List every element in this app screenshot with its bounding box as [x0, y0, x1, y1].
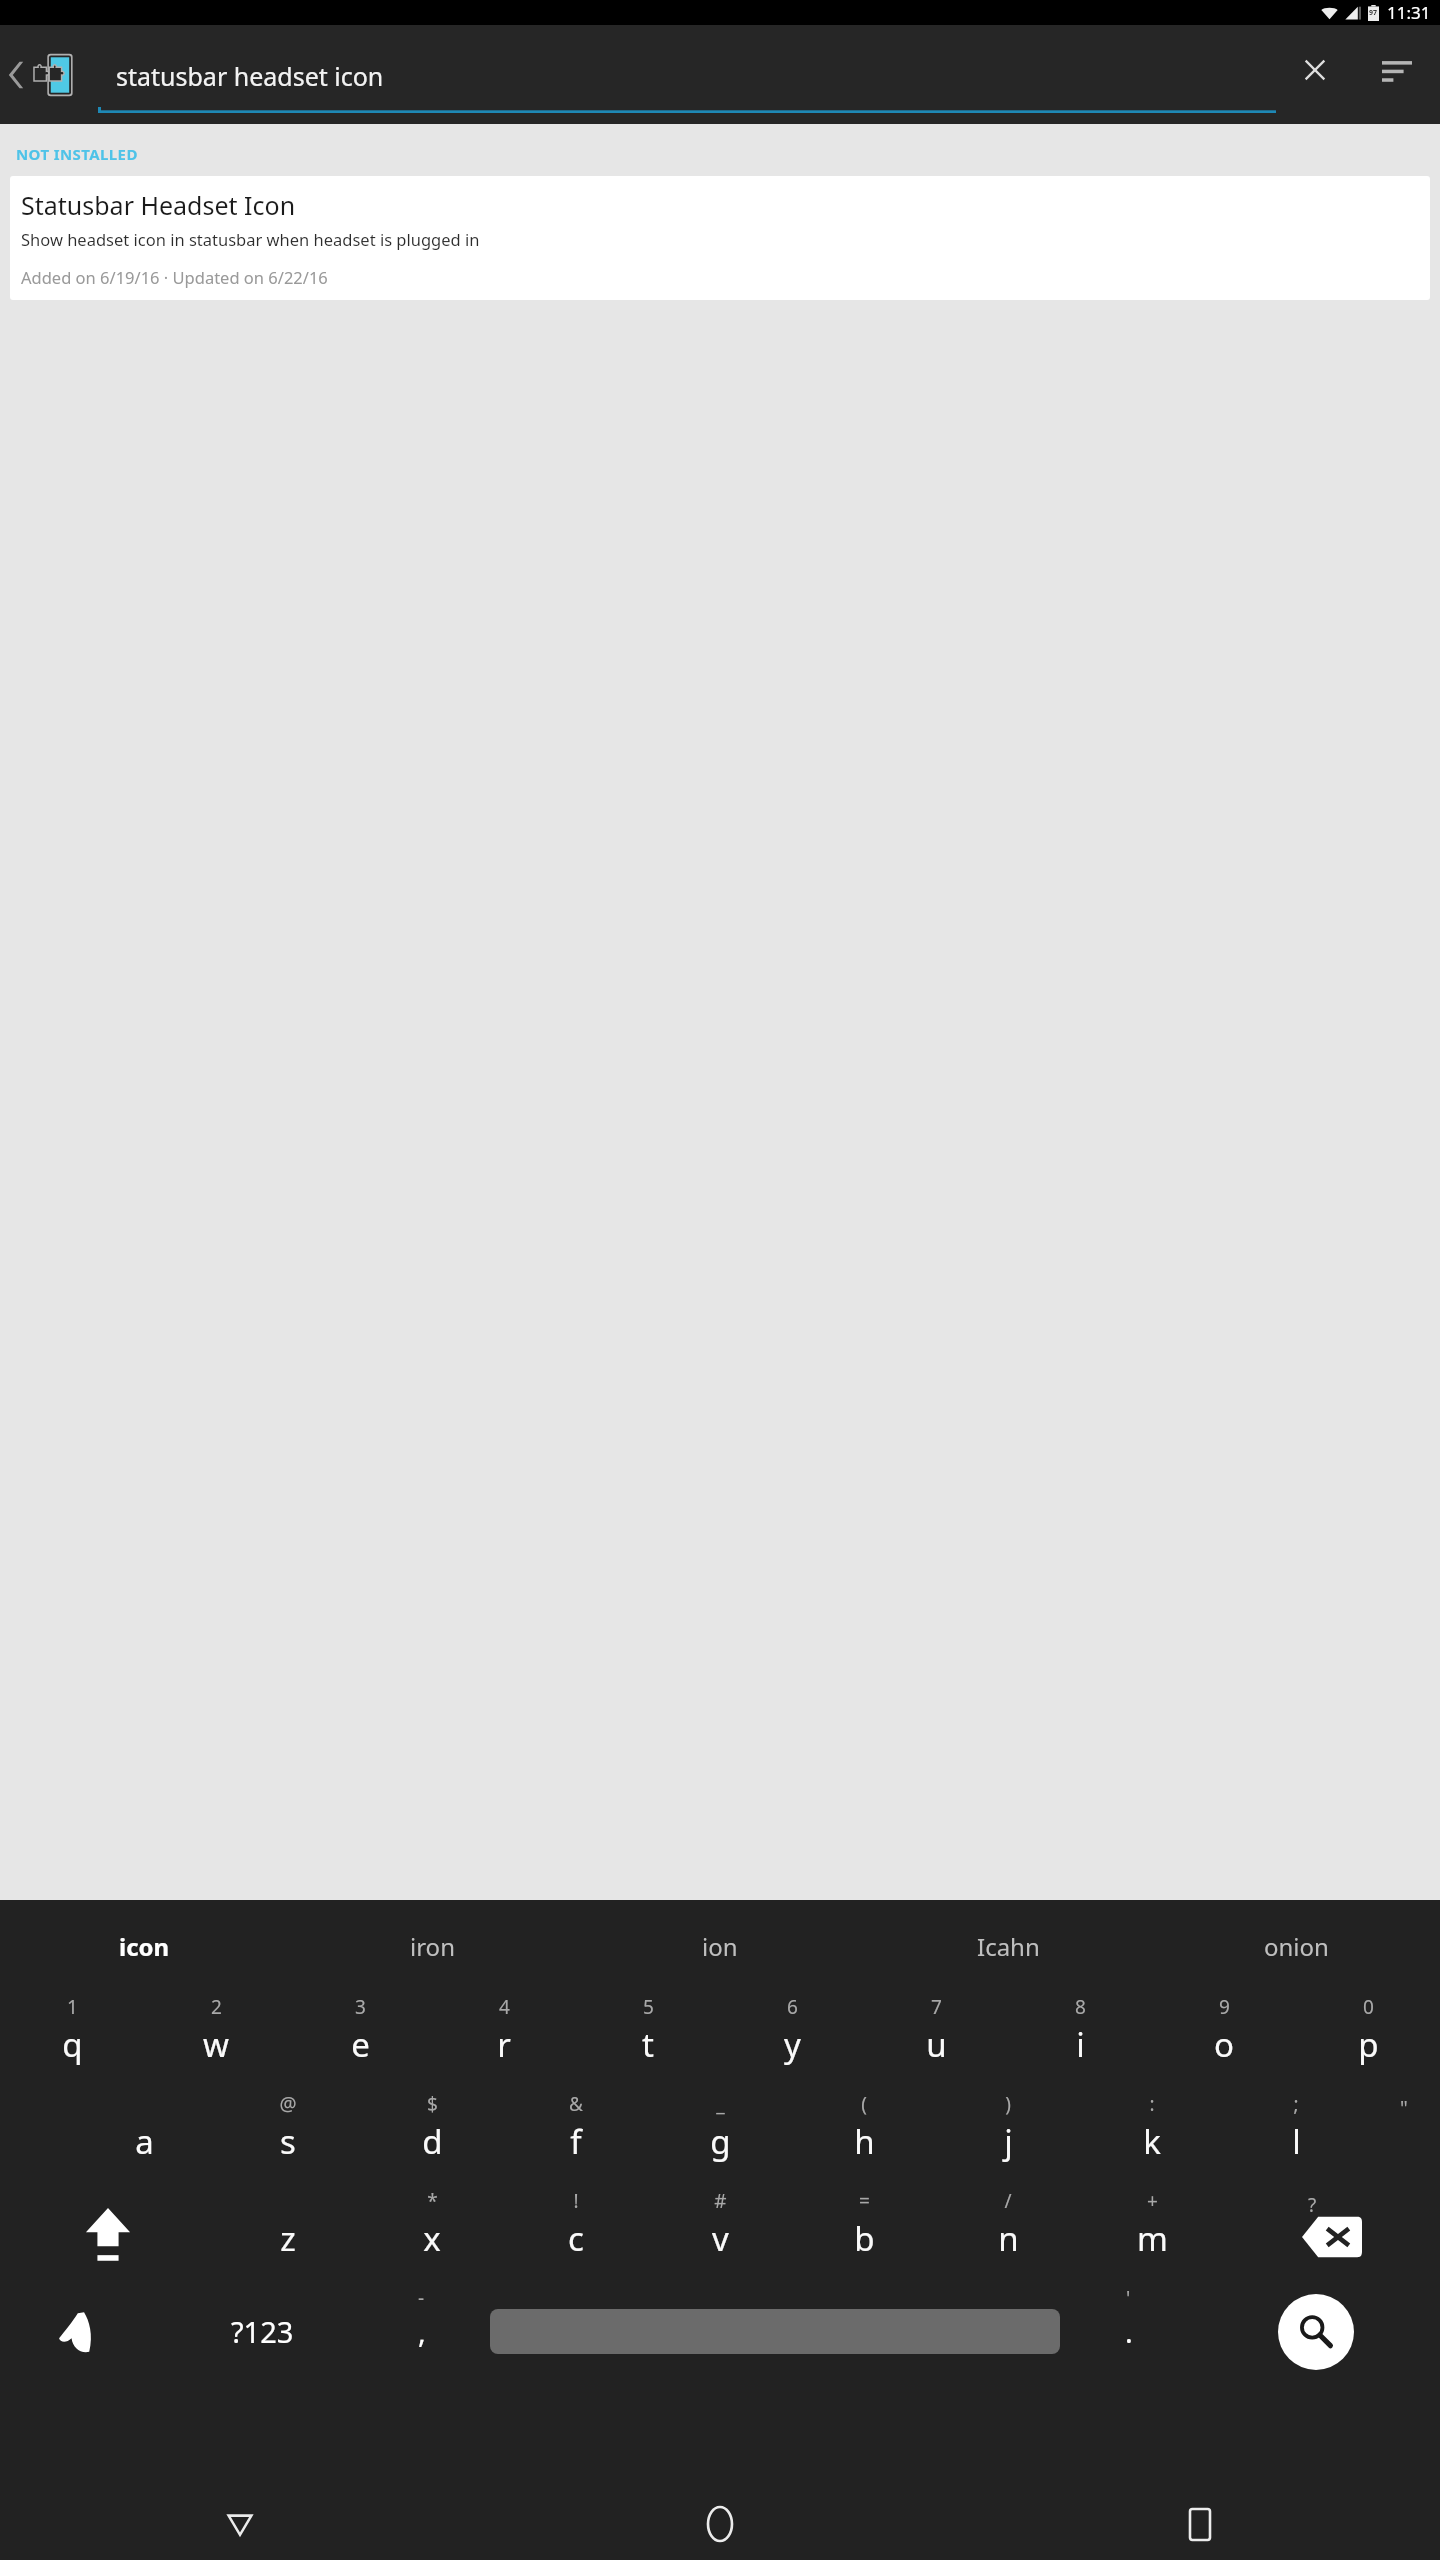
staticText: y: [784, 2022, 801, 2067]
staticText: Show headset icon in statusbar when head…: [21, 228, 480, 250]
staticText: 2: [211, 1994, 222, 2020]
staticText: o: [1214, 2022, 1234, 2067]
staticText: @: [279, 2091, 297, 2117]
staticText: #: [714, 2188, 727, 2214]
button[interactable]: 2: [144, 1992, 288, 2089]
staticText: p: [1358, 2022, 1379, 2067]
button[interactable]: iron: [288, 1900, 576, 1992]
staticText: *: [427, 2188, 438, 2214]
button[interactable]: 6: [720, 1992, 864, 2089]
staticText: w: [203, 2022, 229, 2067]
staticText: g: [710, 2119, 731, 2164]
staticText: v: [712, 2216, 729, 2261]
staticText: Added on 6/19/16 · Updated on 6/22/16: [21, 266, 328, 288]
staticText: ?: [1308, 2192, 1317, 2218]
staticText: i: [1076, 2022, 1085, 2067]
button[interactable]: Shift: [0, 2186, 216, 2283]
button[interactable]: $: [360, 2089, 504, 2186]
staticText: 97: [1369, 8, 1378, 18]
staticText: /: [1004, 2188, 1012, 2214]
button[interactable]: :: [1080, 2089, 1224, 2186]
button[interactable]: ion: [576, 1900, 864, 1992]
button[interactable]: &: [504, 2089, 648, 2186]
staticText: 8: [1075, 1994, 1086, 2020]
staticText: ?123: [231, 2312, 294, 2351]
staticText: ion: [702, 1930, 738, 1963]
staticText: 4: [499, 1994, 510, 2020]
staticText: -: [418, 2285, 425, 2311]
staticText: ,: [418, 2312, 426, 2351]
staticText: x: [423, 2216, 441, 2261]
button[interactable]: 4: [432, 1992, 576, 2089]
button[interactable]: Backspace: [1224, 2186, 1440, 2283]
staticText: ': [1126, 2285, 1131, 2311]
button[interactable]: Recent apps: [960, 2488, 1440, 2560]
staticText: &: [569, 2091, 583, 2117]
staticText: 11:31: [1387, 1, 1431, 24]
button[interactable]: Home: [480, 2488, 960, 2560]
button[interactable]: Clear search: [1276, 25, 1354, 124]
staticText: 0: [1363, 1994, 1374, 2020]
button[interactable]: *: [360, 2186, 504, 2283]
staticText: icon: [119, 1930, 170, 1963]
staticText: t: [642, 2022, 654, 2067]
staticText: k: [1143, 2119, 1161, 2164]
button[interactable]: !: [504, 2186, 648, 2283]
button[interactable]: ): [936, 2089, 1080, 2186]
button[interactable]: Emoji: [0, 2283, 165, 2380]
button[interactable]: Search: [1278, 2294, 1354, 2370]
button[interactable]: ?123: [165, 2283, 359, 2380]
staticText: q: [62, 2022, 83, 2067]
staticText: u: [926, 2022, 947, 2067]
staticText: 6: [787, 1994, 798, 2020]
button[interactable]: /: [936, 2186, 1080, 2283]
button[interactable]: Space: [490, 2309, 1060, 2354]
staticText: :: [1149, 2091, 1155, 2117]
staticText: n: [998, 2216, 1019, 2261]
staticText: onion: [1264, 1930, 1329, 1963]
button[interactable]: Back: [0, 2488, 480, 2560]
button[interactable]: Sort: [1354, 25, 1440, 124]
staticText: e: [351, 2022, 370, 2067]
staticText: ": [1400, 2095, 1408, 2121]
button[interactable]: =: [792, 2186, 936, 2283]
button[interactable]: 9: [1152, 1992, 1296, 2089]
staticText: 7: [931, 1994, 942, 2020]
staticText: s: [280, 2119, 296, 2164]
button[interactable]: ': [1066, 2283, 1191, 2380]
button[interactable]: 1: [0, 1992, 144, 2089]
staticText: c: [568, 2216, 584, 2261]
button[interactable]: #: [648, 2186, 792, 2283]
staticText: h: [854, 2119, 875, 2164]
button[interactable]: Icahn: [864, 1900, 1152, 1992]
button[interactable]: statusbar headset icon: [96, 25, 1276, 124]
button[interactable]: icon: [0, 1900, 288, 1992]
button[interactable]: z: [216, 2186, 360, 2283]
button[interactable]: +: [1080, 2186, 1224, 2283]
button[interactable]: @: [216, 2089, 360, 2186]
button[interactable]: _: [648, 2089, 792, 2186]
staticText: Statusbar Headset Icon: [21, 188, 296, 222]
button[interactable]: onion: [1152, 1900, 1440, 1992]
staticText: Icahn: [977, 1930, 1040, 1963]
staticText: _: [716, 2091, 725, 2117]
staticText: j: [1004, 2119, 1013, 2164]
staticText: iron: [410, 1930, 455, 1963]
button[interactable]: 0: [1296, 1992, 1440, 2089]
button[interactable]: Statusbar Headset Icon: [10, 176, 1430, 300]
staticText: d: [422, 2119, 443, 2164]
button[interactable]: ;: [1224, 2089, 1368, 2186]
button[interactable]: 3: [288, 1992, 432, 2089]
staticText: (: [861, 2091, 867, 2117]
button[interactable]: 7: [864, 1992, 1008, 2089]
button[interactable]: (: [792, 2089, 936, 2186]
button[interactable]: Navigate up: [0, 25, 96, 124]
button[interactable]: 8: [1008, 1992, 1152, 2089]
button[interactable]: -: [359, 2283, 484, 2380]
button[interactable]: 5: [576, 1992, 720, 2089]
staticText: 5: [643, 1994, 654, 2020]
staticText: 1: [67, 1994, 78, 2020]
staticText: r: [497, 2022, 511, 2067]
staticText: l: [1292, 2119, 1301, 2164]
button[interactable]: a: [72, 2089, 216, 2186]
